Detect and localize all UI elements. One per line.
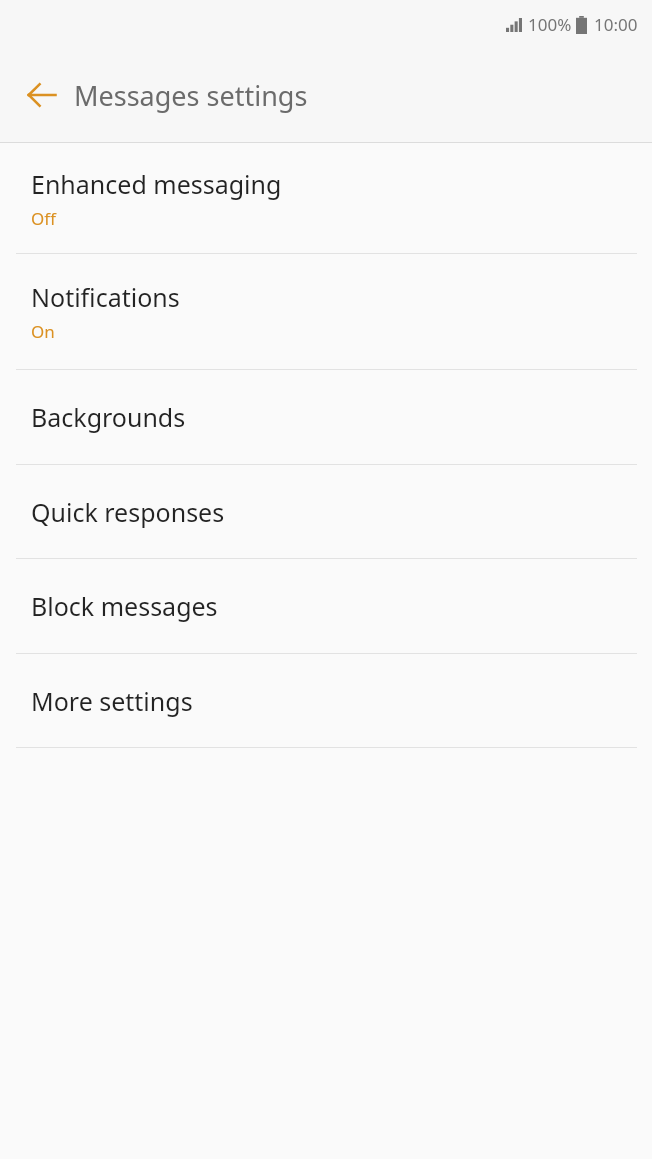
button[interactable]: Enhanced messaging [0,143,652,253]
staticText: Notifications [31,280,180,314]
staticText: Backgrounds [31,400,186,434]
staticText: On [31,320,55,343]
staticText: 100% [528,13,572,36]
button[interactable]: More settings [0,654,652,747]
button[interactable]: Navigate up [14,67,70,123]
staticText: Messages settings [74,77,308,114]
staticText: Block messages [31,589,218,623]
button[interactable]: Quick responses [0,465,652,558]
staticText: Enhanced messaging [31,167,282,201]
staticText: Off [31,207,56,230]
staticText: 10:00 [594,13,638,36]
button[interactable]: Block messages [0,559,652,653]
button[interactable]: Notifications [0,254,652,369]
staticText: More settings [31,684,193,718]
staticText: Quick responses [31,495,225,529]
button[interactable]: Backgrounds [0,370,652,464]
